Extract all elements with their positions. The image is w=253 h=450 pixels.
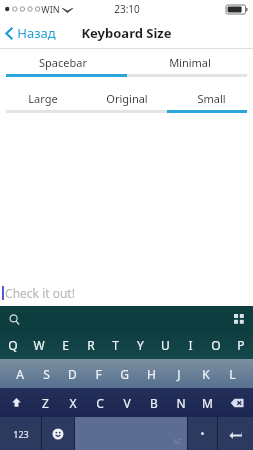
button[interactable]: O [203, 330, 228, 359]
button[interactable]: I [178, 330, 203, 359]
button[interactable]: T [103, 330, 128, 359]
button[interactable]: A [7, 359, 33, 388]
staticText: I [188, 337, 193, 353]
staticText: M [202, 395, 213, 411]
staticText: 23:10 [114, 2, 140, 16]
staticText: J [177, 366, 181, 382]
button[interactable]: Keyboard layouts [229, 309, 249, 329]
staticText: AC [173, 437, 182, 447]
staticText: E [62, 337, 69, 353]
button[interactable]: Emoji [42, 417, 74, 450]
button[interactable]: 123 [0, 417, 41, 450]
staticText: Spacebar [39, 55, 87, 70]
button[interactable]: D [59, 359, 85, 388]
staticText: Q [8, 337, 18, 353]
button[interactable]: N [167, 388, 194, 417]
staticText: B [150, 395, 158, 411]
button[interactable]: Search [4, 309, 24, 329]
button[interactable]: K [192, 359, 219, 388]
button[interactable]: C [86, 388, 113, 417]
button[interactable]: Minimal [126, 53, 253, 71]
button[interactable]: P [228, 330, 253, 359]
button[interactable]: G [111, 359, 138, 388]
staticText: L [229, 366, 236, 382]
staticText: Small [197, 91, 226, 106]
button[interactable]: L [219, 359, 246, 388]
button[interactable]: W [26, 330, 52, 359]
button[interactable]: X [59, 388, 86, 417]
button[interactable]: Small [169, 89, 253, 107]
staticText: Z [42, 395, 49, 411]
button[interactable] [188, 417, 217, 450]
button[interactable]: Shift [0, 388, 32, 417]
button[interactable]: Spacebar [0, 53, 126, 71]
button[interactable]: F [85, 359, 111, 388]
button[interactable]: Q [0, 330, 26, 359]
button[interactable]: Y [128, 330, 153, 359]
staticText: X [69, 395, 77, 411]
staticText: Check it out! [5, 285, 75, 301]
staticText: Назад [17, 24, 56, 42]
staticText: T [112, 337, 119, 353]
staticText: O [211, 337, 221, 353]
button[interactable]: E [52, 330, 78, 359]
button[interactable]: Check it out! [0, 280, 253, 306]
button[interactable]: Назад [0, 20, 64, 46]
button[interactable]: Z [32, 388, 59, 417]
staticText: Original [106, 91, 148, 106]
staticText: W [33, 337, 45, 353]
button[interactable]: R [78, 330, 103, 359]
staticText: R [87, 337, 95, 353]
staticText: V [123, 395, 131, 411]
staticText: C [96, 395, 104, 411]
staticText: Minimal [169, 55, 211, 70]
staticText: D [68, 366, 77, 382]
staticText: Y [137, 337, 144, 353]
button[interactable]: Large [0, 89, 85, 107]
staticText: WIN [41, 3, 60, 15]
staticText: 123 [13, 428, 29, 440]
staticText: H [147, 366, 156, 382]
staticText: Keyboard Size [81, 24, 172, 42]
button[interactable]: M [194, 388, 221, 417]
button[interactable]: J [165, 359, 192, 388]
staticText: Large [28, 91, 58, 106]
button[interactable]: Enter [218, 417, 253, 450]
staticText: K [202, 366, 210, 382]
button[interactable]: H [138, 359, 165, 388]
button[interactable]: B [140, 388, 167, 417]
staticText: U [161, 337, 170, 353]
staticText: N [176, 395, 186, 411]
button[interactable]: V [113, 388, 140, 417]
button[interactable]: Original [85, 89, 169, 107]
staticText: F [95, 366, 102, 382]
button[interactable]: U [153, 330, 178, 359]
staticText: A [16, 366, 24, 382]
staticText: G [120, 366, 129, 382]
staticText: S [43, 366, 50, 382]
button[interactable]: Backspace [221, 388, 253, 417]
button[interactable]: S [33, 359, 59, 388]
staticText: P [237, 337, 245, 353]
